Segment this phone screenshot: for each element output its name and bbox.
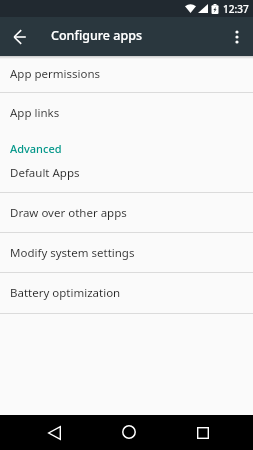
button[interactable]: Default Apps: [0, 160, 253, 192]
button[interactable]: App links: [0, 93, 253, 133]
staticText: Draw over other apps: [10, 205, 127, 221]
staticText: Battery optimization: [10, 285, 121, 301]
button[interactable]: [233, 29, 241, 45]
staticText: 12:37: [223, 2, 249, 16]
button[interactable]: [119, 422, 139, 442]
staticText: Modify system settings: [10, 245, 135, 261]
button[interactable]: [44, 423, 64, 443]
button[interactable]: [12, 30, 26, 44]
staticText: App permissions: [10, 66, 101, 82]
staticText: Advanced: [10, 141, 62, 156]
button[interactable]: App permissions: [0, 56, 253, 92]
button[interactable]: [193, 423, 213, 443]
staticText: Configure apps: [51, 27, 143, 44]
staticText: App links: [10, 105, 60, 121]
button[interactable]: Modify system settings: [0, 233, 253, 272]
button[interactable]: Battery optimization: [0, 273, 253, 313]
staticText: Default Apps: [10, 165, 80, 181]
button[interactable]: Draw over other apps: [0, 193, 253, 232]
